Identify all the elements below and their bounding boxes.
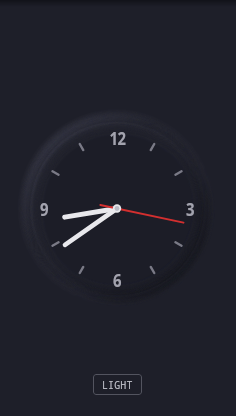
staticText: 12 — [109, 127, 126, 149]
staticText: 3 — [186, 198, 194, 220]
staticText: 9 — [40, 198, 48, 220]
staticText: 6 — [113, 269, 121, 291]
staticText: LIGHT — [102, 378, 133, 392]
button[interactable]: LIGHT — [93, 374, 142, 395]
